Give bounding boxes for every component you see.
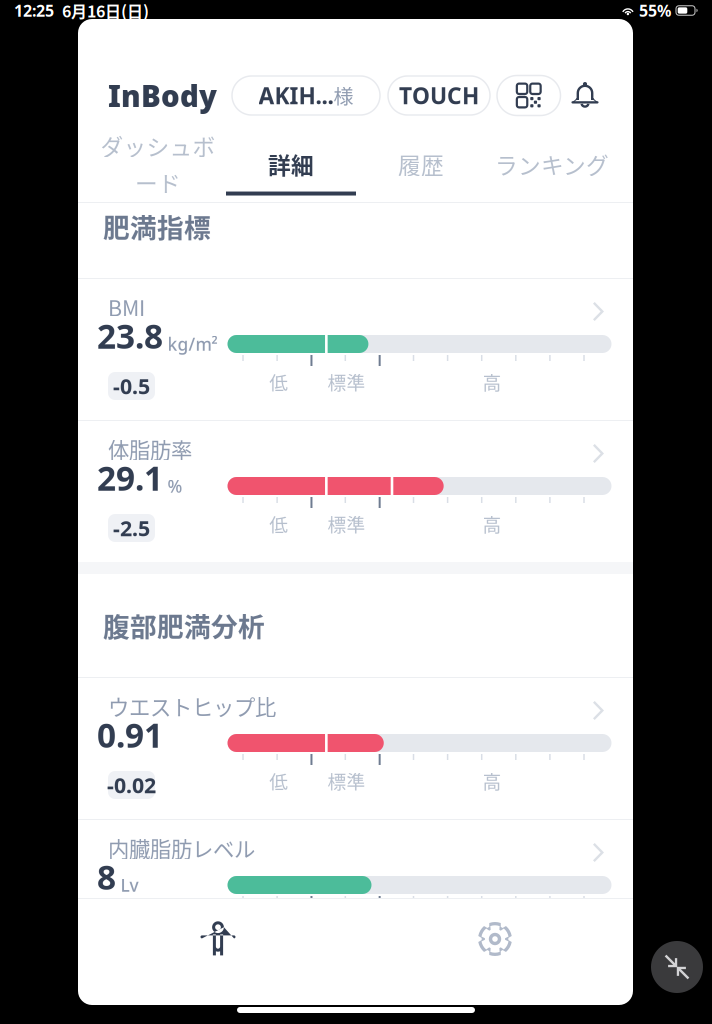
staticText: -2.5 — [113, 514, 150, 542]
button[interactable]: AKIH... — [232, 76, 380, 115]
staticText: 肥満指標 — [103, 207, 211, 245]
staticText: ランキング — [495, 148, 609, 180]
button[interactable]: Settings — [454, 910, 536, 968]
staticText: 詳細 — [268, 148, 314, 180]
staticText: 履歴 — [398, 148, 444, 180]
staticText: 23.8 — [97, 314, 163, 358]
staticText: 体脂肪率 — [108, 434, 192, 464]
staticText: 標準 — [327, 510, 365, 537]
staticText: 様 — [333, 81, 353, 110]
button[interactable]: Exit full screen — [651, 941, 703, 993]
button[interactable]: BMI — [78, 279, 633, 420]
staticText: 低 — [269, 510, 288, 537]
button[interactable]: ダッシュボ — [93, 126, 223, 202]
staticText: 12:25 — [14, 0, 54, 21]
button[interactable]: Body composition — [177, 910, 259, 968]
staticText: 高 — [482, 909, 501, 936]
button[interactable]: 詳細 — [226, 126, 356, 202]
staticText: -0.02 — [107, 771, 156, 799]
staticText: kg/m² — [167, 332, 217, 355]
staticText: 標準 — [327, 368, 365, 395]
staticText: 内臓脂肪レベル — [108, 833, 255, 863]
staticText: 29.1 — [97, 456, 163, 500]
staticText: 6月16日(日) — [62, 0, 149, 22]
staticText: 0.91 — [97, 713, 163, 757]
staticText: ード — [135, 166, 181, 199]
staticText: BMI — [108, 292, 145, 322]
staticText: % — [167, 474, 182, 497]
staticText: Lv — [120, 873, 138, 896]
button[interactable]: ウエストヒップ比 — [78, 678, 633, 819]
staticText: 55% — [639, 0, 671, 21]
staticText: 低 — [269, 368, 288, 395]
button[interactable]: Notifications — [568, 76, 602, 116]
button[interactable]: 体脂肪率 — [78, 421, 633, 562]
staticText: TOUCH — [399, 80, 479, 110]
staticText: 高 — [482, 368, 501, 395]
staticText: ダッシュボ — [100, 129, 215, 162]
staticText: 腹部肥満分析 — [103, 606, 265, 644]
button[interactable]: 内臓脂肪レベル — [78, 820, 633, 961]
staticText: 8 — [97, 855, 116, 899]
button[interactable]: TOUCH — [388, 76, 490, 115]
staticText: 高 — [482, 767, 501, 794]
staticText: 低 — [269, 767, 288, 794]
staticText: 高 — [482, 510, 501, 537]
staticText: -0.5 — [113, 372, 150, 400]
button[interactable]: Scan QR code — [497, 75, 560, 115]
staticText: ウエストヒップ比 — [108, 691, 276, 721]
staticText: AKIH... — [258, 80, 333, 110]
button[interactable]: 履歴 — [356, 126, 486, 202]
button[interactable]: ランキング — [487, 126, 617, 202]
staticText: InBody — [108, 76, 217, 115]
staticText: 標準 — [327, 767, 365, 794]
